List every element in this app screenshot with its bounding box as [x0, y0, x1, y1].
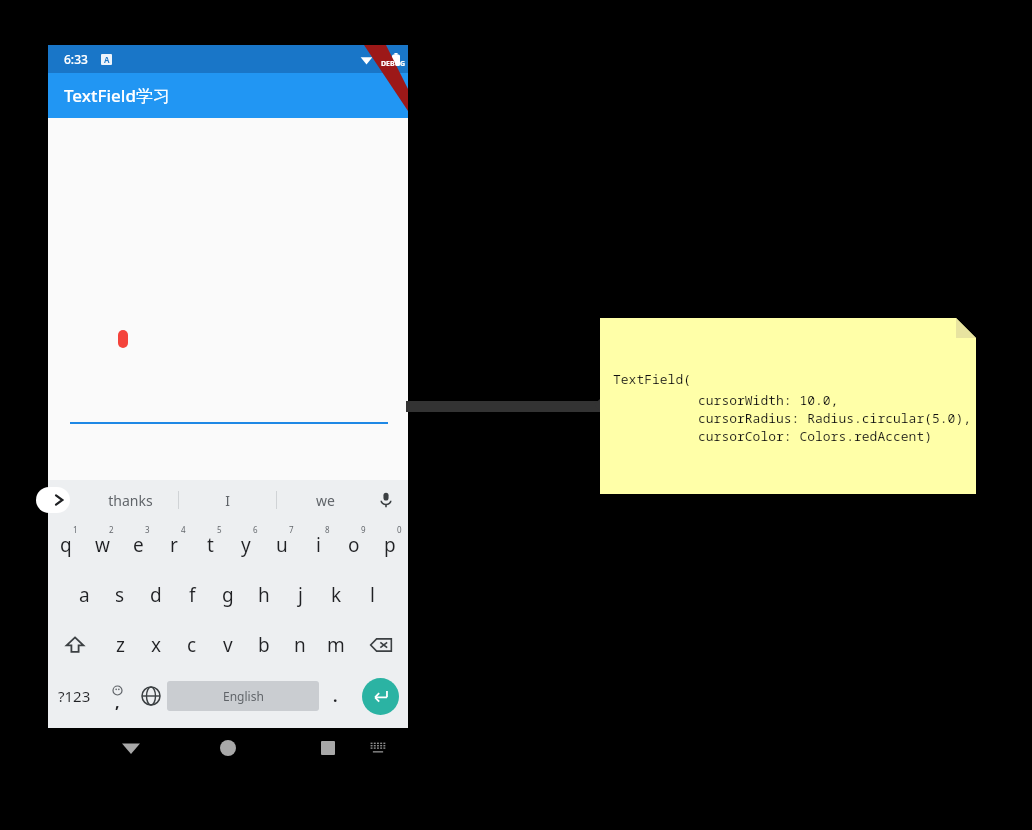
staticText: x — [151, 632, 162, 658]
staticText: 8 — [325, 524, 330, 535]
button[interactable]: Expand suggestions — [36, 487, 70, 513]
staticText: , — [115, 691, 120, 713]
button[interactable]: Change language — [134, 670, 167, 722]
staticText: b — [258, 632, 270, 658]
staticText: TextField( — [613, 370, 692, 388]
staticText: s — [115, 582, 125, 608]
staticText: m — [327, 632, 345, 658]
staticText: o — [348, 532, 360, 558]
button[interactable]: x — [138, 620, 174, 670]
button[interactable]: Back — [116, 733, 146, 763]
staticText: q — [60, 532, 72, 558]
button[interactable]: we — [277, 480, 374, 520]
button[interactable]: Emoji and comma — [101, 670, 134, 722]
button[interactable]: Backspace — [354, 620, 408, 670]
button[interactable]: d — [138, 570, 174, 620]
button[interactable]: . — [319, 670, 352, 722]
button[interactable]: j — [282, 570, 318, 620]
staticText: z — [116, 632, 125, 658]
button[interactable]: m — [318, 620, 354, 670]
button[interactable]: Enter — [352, 670, 408, 722]
staticText: A — [104, 54, 110, 65]
staticText: . — [333, 685, 338, 707]
staticText: j — [298, 582, 303, 608]
staticText: 4 — [181, 524, 186, 535]
staticText: 1 — [73, 524, 78, 535]
staticText: i — [316, 532, 321, 558]
button[interactable]: i — [300, 520, 336, 570]
button[interactable]: thanks — [82, 480, 178, 520]
staticText: 3 — [145, 524, 150, 535]
button[interactable]: p — [372, 520, 408, 570]
staticText: cursorRadius: Radius.circular(5.0), — [698, 409, 972, 427]
staticText: v — [223, 632, 233, 658]
staticText: 6 — [253, 524, 258, 535]
staticText: 6:33 — [64, 51, 88, 67]
staticText: r — [170, 532, 178, 558]
staticText: cursorWidth: 10.0, — [698, 391, 839, 409]
button[interactable]: q — [48, 520, 84, 570]
staticText: DEBUG — [381, 59, 406, 69]
button[interactable]: c — [174, 620, 210, 670]
staticText: 5 — [217, 524, 222, 535]
staticText: t — [207, 532, 214, 558]
button[interactable]: h — [246, 570, 282, 620]
staticText: l — [370, 582, 375, 608]
staticText: f — [189, 582, 196, 608]
button[interactable]: ?123 — [48, 670, 101, 722]
staticText: d — [150, 582, 162, 608]
button[interactable]: u — [264, 520, 300, 570]
staticText: p — [384, 532, 396, 558]
button[interactable]: a — [66, 570, 102, 620]
button[interactable]: Voice input — [374, 488, 398, 512]
button[interactable]: g — [210, 570, 246, 620]
button[interactable]: z — [102, 620, 138, 670]
button[interactable]: f — [174, 570, 210, 620]
staticText: cursorColor: Colors.redAccent) — [698, 427, 933, 445]
staticText: TextField学习 — [64, 84, 170, 107]
button[interactable]: v — [210, 620, 246, 670]
staticText: k — [331, 582, 342, 608]
button[interactable]: I — [179, 480, 276, 520]
button[interactable]: r — [156, 520, 192, 570]
staticText: h — [258, 582, 270, 608]
staticText: y — [241, 532, 251, 558]
staticText: g — [222, 582, 234, 608]
button[interactable]: y — [228, 520, 264, 570]
staticText: we — [316, 491, 335, 510]
staticText: ?123 — [58, 686, 91, 706]
button[interactable]: Recent apps — [313, 733, 343, 763]
staticText: 0 — [397, 524, 402, 535]
staticText: 2 — [109, 524, 114, 535]
button[interactable]: Shift — [48, 620, 102, 670]
button[interactable]: s — [102, 570, 138, 620]
staticText: 9 — [361, 524, 366, 535]
button[interactable]: n — [282, 620, 318, 670]
staticText: e — [133, 532, 144, 558]
staticText: English — [223, 688, 264, 704]
button[interactable]: k — [318, 570, 354, 620]
staticText: a — [79, 582, 90, 608]
staticText: I — [225, 491, 230, 510]
button[interactable]: Hide keyboard — [363, 733, 393, 763]
button[interactable]: o — [336, 520, 372, 570]
staticText: n — [294, 632, 306, 658]
button[interactable]: b — [246, 620, 282, 670]
staticText: 7 — [289, 524, 294, 535]
button[interactable]: e — [120, 520, 156, 570]
staticText: w — [95, 532, 110, 558]
staticText: c — [187, 632, 197, 658]
staticText: u — [276, 532, 288, 558]
button[interactable]: Home — [213, 733, 243, 763]
button[interactable]: t — [192, 520, 228, 570]
button[interactable]: w — [84, 520, 120, 570]
button[interactable]: English — [167, 681, 319, 711]
staticText: thanks — [108, 491, 153, 510]
button[interactable]: l — [354, 570, 390, 620]
